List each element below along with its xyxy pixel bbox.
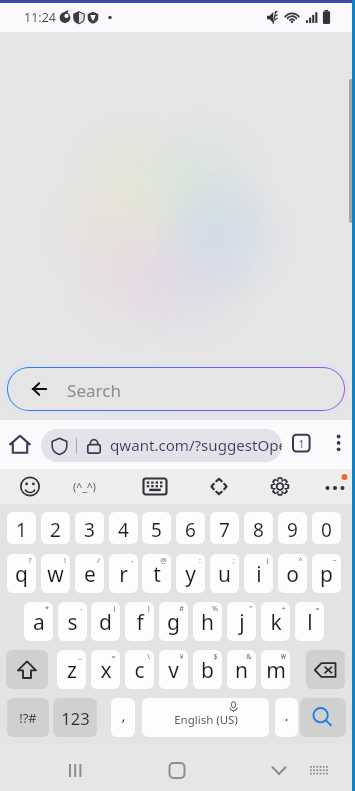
button[interactable]: q	[7, 554, 36, 593]
button[interactable]: i	[244, 554, 273, 593]
staticText: -	[131, 555, 134, 565]
staticText: v	[168, 656, 179, 685]
button[interactable]: d	[91, 602, 120, 641]
staticText: =	[315, 603, 320, 613]
staticText: !	[64, 555, 66, 565]
staticText: q	[15, 560, 28, 589]
button[interactable]: a	[24, 602, 53, 641]
button[interactable]: Hide keyboard	[300, 750, 344, 786]
button[interactable]: h	[193, 602, 222, 641]
button[interactable]: Backspace	[306, 650, 345, 689]
staticText: w	[47, 560, 64, 589]
button[interactable]: .	[275, 698, 298, 737]
staticText: ₩	[281, 651, 286, 661]
staticText: ″	[249, 603, 252, 613]
button[interactable]: g	[159, 602, 188, 641]
button[interactable]: j	[227, 602, 256, 641]
staticText: =	[111, 651, 116, 661]
button[interactable]: 2	[41, 512, 70, 544]
button[interactable]: z	[57, 650, 86, 689]
button[interactable]: 8	[244, 512, 273, 544]
staticText: l	[307, 608, 313, 637]
button[interactable]: r	[109, 554, 138, 593]
staticText: p	[320, 560, 333, 589]
button[interactable]: t	[142, 554, 171, 593]
staticText: .	[284, 705, 289, 725]
button[interactable]: v	[159, 650, 188, 689]
staticText: ~	[332, 555, 337, 565]
staticText: #	[179, 603, 184, 613]
button[interactable]: Search	[8, 368, 344, 410]
button[interactable]: Tabs	[292, 433, 314, 455]
button[interactable]: More options	[330, 433, 350, 453]
staticText: English (US)	[174, 712, 238, 728]
staticText: c	[134, 656, 145, 685]
button[interactable]: m	[261, 650, 290, 689]
staticText: 2	[50, 517, 61, 543]
staticText: h	[201, 608, 214, 637]
button[interactable]: 0	[312, 512, 341, 544]
staticText: &	[246, 651, 252, 661]
button[interactable]: s	[58, 602, 87, 641]
button[interactable]: Back	[255, 750, 303, 786]
staticText: (^_^)	[73, 480, 96, 494]
staticText: ,	[121, 705, 126, 725]
button[interactable]: Numbers	[53, 698, 97, 737]
staticText: s	[67, 608, 78, 637]
staticText: 1	[298, 437, 305, 451]
button[interactable]: Recents	[50, 750, 98, 786]
button[interactable]: n	[227, 650, 256, 689]
button[interactable]: Home	[7, 432, 33, 458]
staticText: !?#	[19, 709, 37, 727]
staticText: )	[147, 603, 150, 613]
staticText: 1	[16, 517, 27, 543]
button[interactable]: l	[295, 602, 324, 641]
button[interactable]: 7	[210, 512, 239, 544]
staticText: 123	[61, 707, 90, 729]
button[interactable]: 6	[176, 512, 205, 544]
button[interactable]: 9	[278, 512, 307, 544]
button[interactable]: f	[125, 602, 154, 641]
staticText: k	[270, 608, 282, 637]
staticText: -	[80, 603, 83, 613]
button[interactable]: k	[261, 602, 290, 641]
staticText: _	[78, 651, 82, 661]
button[interactable]: Shift	[6, 650, 48, 689]
button[interactable]: Space	[142, 698, 269, 737]
button[interactable]: x	[91, 650, 120, 689]
staticText: $	[213, 651, 218, 661]
button[interactable]: c	[125, 650, 154, 689]
button[interactable]: p	[312, 554, 341, 593]
button[interactable]: 1	[7, 512, 36, 544]
staticText: j	[239, 608, 245, 637]
staticText: m	[266, 656, 286, 685]
staticText: x	[100, 656, 112, 685]
staticText: d	[99, 608, 112, 637]
button[interactable]: w	[41, 554, 70, 593]
button[interactable]: qwant.com/?suggestOpen=	[41, 429, 282, 462]
button[interactable]: Search	[300, 698, 346, 737]
button[interactable]: Symbols	[7, 698, 49, 737]
staticText: y	[185, 560, 196, 589]
button[interactable]: 5	[142, 512, 171, 544]
button[interactable]: b	[193, 650, 222, 689]
staticText: 0	[321, 517, 332, 543]
staticText: e	[84, 560, 96, 589]
staticText: @	[160, 555, 167, 565]
button[interactable]: 3	[75, 512, 104, 544]
staticText: 4	[118, 517, 129, 543]
button[interactable]: e	[75, 554, 104, 593]
staticText: qwant.com/?suggestOpen=	[110, 435, 282, 456]
button[interactable]: ,	[111, 698, 135, 737]
staticText: f	[136, 608, 144, 637]
staticText: n	[235, 656, 248, 685]
button[interactable]: 4	[109, 512, 138, 544]
button[interactable]: o	[278, 554, 307, 593]
staticText: o	[286, 560, 299, 589]
button[interactable]: u	[210, 554, 239, 593]
button[interactable]: y	[176, 554, 205, 593]
staticText: 8	[253, 517, 264, 543]
button[interactable]: Home	[154, 750, 202, 786]
staticText: Search	[67, 379, 121, 402]
staticText: *	[45, 603, 49, 613]
